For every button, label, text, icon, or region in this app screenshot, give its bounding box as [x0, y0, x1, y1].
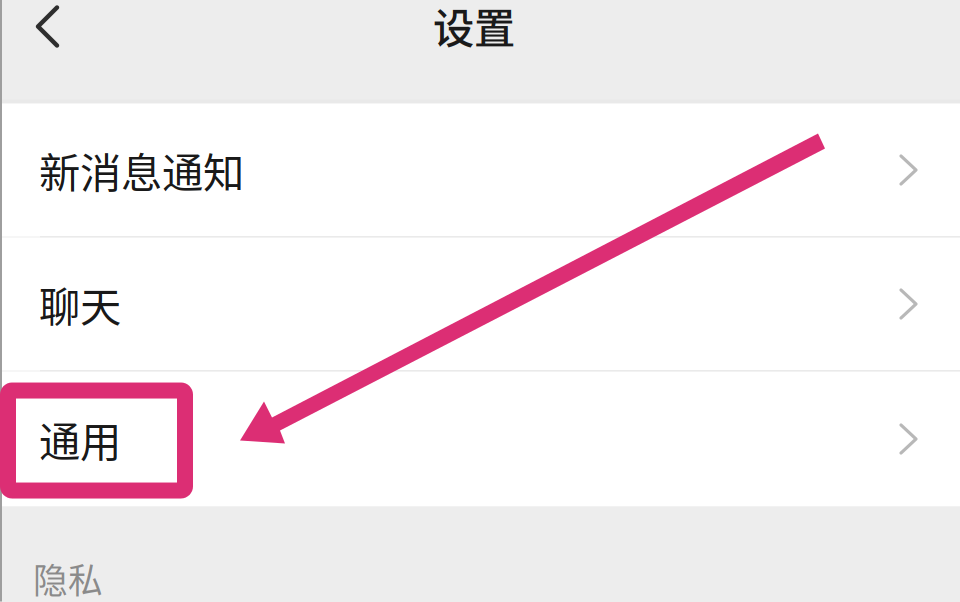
- button[interactable]: 通用: [0, 371, 960, 506]
- staticText: 隐私: [33, 553, 103, 602]
- button[interactable]: 聊天: [0, 237, 960, 370]
- staticText: 聊天: [39, 274, 121, 334]
- staticText: 新消息通知: [39, 140, 244, 200]
- button[interactable]: 新消息通知: [0, 103, 960, 236]
- staticText: 通用: [39, 409, 121, 469]
- staticText: 设置: [433, 0, 515, 55]
- button[interactable]: Back: [0, 0, 81, 59]
